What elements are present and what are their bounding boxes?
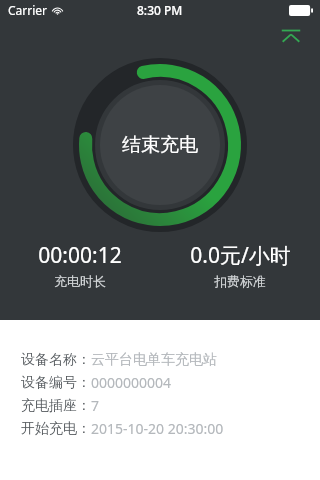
staticText: 扣费标准 (214, 273, 266, 289)
button[interactable]: 结束充电 (100, 85, 220, 205)
staticText: 设备名称： (21, 351, 91, 369)
staticText: 结束充电 (122, 133, 198, 157)
staticText: 设备编号： (21, 374, 91, 392)
button[interactable]: Collapse (276, 20, 306, 50)
staticText: 开始充电： (21, 420, 91, 438)
staticText: 0.0元/小时 (190, 241, 291, 270)
staticText: 0000000004 (91, 373, 172, 392)
button[interactable]: 00:00:12 (0, 241, 160, 289)
staticText: 充电插座： (21, 397, 91, 415)
staticText: 2015-10-20 20:30:00 (91, 419, 224, 438)
staticText: 云平台电单车充电站 (91, 351, 217, 369)
staticText: Carrier (8, 2, 48, 18)
button[interactable]: 0.0元/小时 (160, 241, 320, 289)
staticText: 8:30 PM (137, 2, 183, 18)
staticText: 7 (91, 396, 100, 415)
staticText: 00:00:12 (38, 241, 122, 270)
staticText: 充电时长 (54, 273, 106, 289)
